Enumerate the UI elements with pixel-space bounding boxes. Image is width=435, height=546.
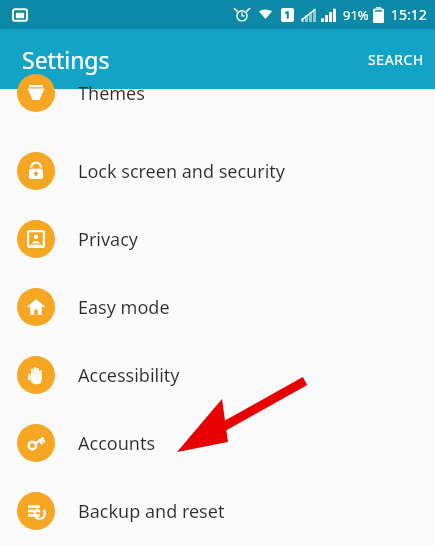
button[interactable]: SEARCH <box>357 40 435 79</box>
staticText: Accessibility <box>78 363 180 388</box>
staticText: 91% <box>343 6 369 24</box>
staticText: Easy mode <box>78 295 170 320</box>
staticText: Privacy <box>78 227 139 252</box>
button[interactable]: Themes <box>0 89 435 137</box>
button[interactable]: Accessibility <box>0 341 435 409</box>
staticText: Backup and reset <box>78 499 225 524</box>
button[interactable]: Backup and reset <box>0 477 435 545</box>
button[interactable]: Easy mode <box>0 273 435 341</box>
staticText: Themes <box>78 81 145 106</box>
staticText: Accounts <box>78 431 156 456</box>
button[interactable]: Lock screen and security <box>0 137 435 205</box>
button[interactable]: Privacy <box>0 205 435 273</box>
staticText: Lock screen and security <box>78 159 285 184</box>
staticText: 15:12 <box>391 5 427 24</box>
button[interactable]: Accounts <box>0 409 435 477</box>
staticText: Settings <box>22 44 110 75</box>
staticText: SEARCH <box>368 50 424 69</box>
